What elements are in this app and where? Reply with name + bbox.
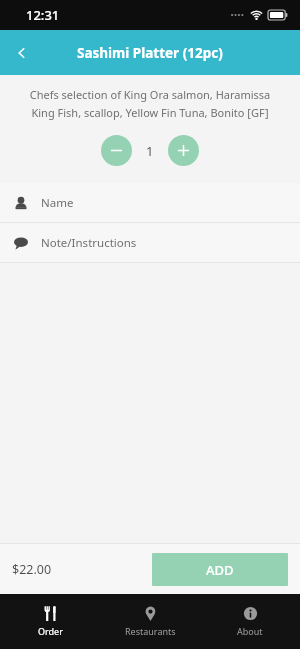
staticText: Order [38, 625, 63, 637]
staticText: Chefs selection of King Ora salmon, Hara… [22, 87, 278, 120]
button[interactable]: Order [0, 594, 100, 649]
staticText: 12:31 [26, 6, 60, 24]
button[interactable]: Decrease quantity [101, 135, 132, 166]
staticText: About [237, 625, 263, 637]
button[interactable]: Note/Instructions [0, 223, 300, 262]
staticText: Note/Instructions [41, 235, 137, 251]
button[interactable]: Back [0, 31, 44, 75]
button[interactable]: Restaurants [100, 594, 200, 649]
staticText: Restaurants [125, 625, 176, 637]
button[interactable]: Name [0, 183, 300, 222]
staticText: $22.00 [12, 561, 52, 578]
staticText: Sashimi Platter (12pc) [77, 44, 223, 62]
button[interactable]: ADD [152, 553, 288, 586]
button[interactable]: Increase quantity [168, 135, 199, 166]
staticText: ADD [206, 561, 234, 579]
staticText: Name [41, 195, 74, 211]
staticText: 1 [146, 142, 154, 160]
button[interactable]: About [200, 594, 300, 649]
